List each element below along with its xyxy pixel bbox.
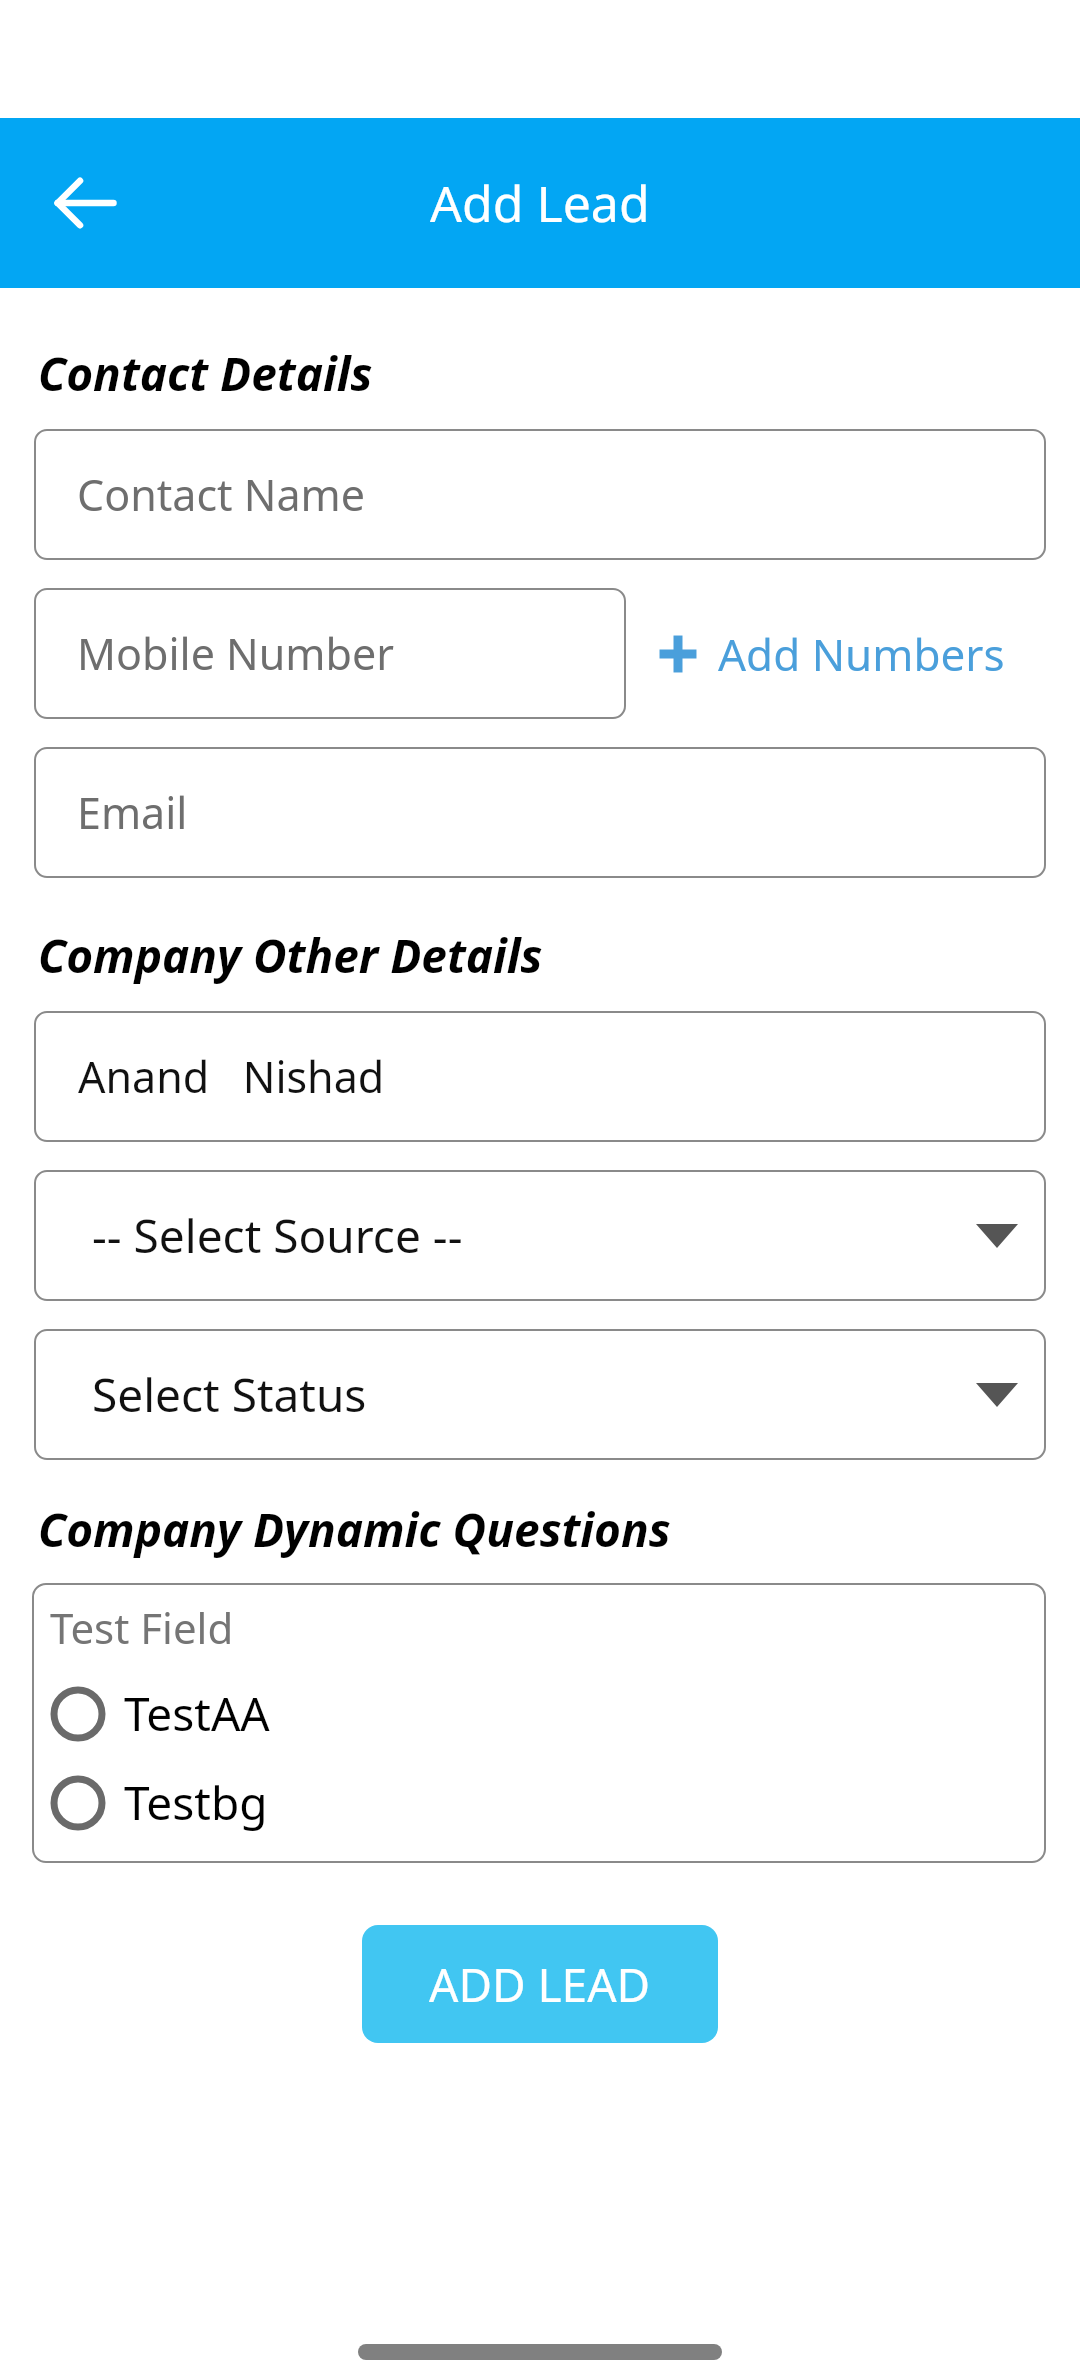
staticText: Test Field <box>50 1599 234 1656</box>
staticText: -- Select Source -- <box>92 1204 463 1267</box>
staticText: Anand Nishad <box>78 1047 385 1106</box>
staticText: Add Lead <box>430 169 650 237</box>
button[interactable]: TestAA <box>50 1678 1046 1749</box>
staticText: Contact Name <box>77 465 366 524</box>
staticText: Testbg <box>124 1771 268 1834</box>
button[interactable]: Add Numbers <box>648 610 1013 698</box>
staticText: ADD LEAD <box>429 1953 651 2016</box>
button[interactable]: Mobile Number <box>34 588 626 719</box>
staticText: Company Other Details <box>38 924 543 987</box>
button[interactable]: Anand Nishad <box>34 1011 1046 1142</box>
button[interactable]: Email <box>34 747 1046 878</box>
staticText: Add Numbers <box>718 624 1005 684</box>
button[interactable]: Test Field <box>32 1583 1046 1863</box>
button[interactable]: Back <box>26 144 144 262</box>
staticText: Select Status <box>92 1363 367 1426</box>
button[interactable]: Select Status <box>34 1329 1046 1460</box>
staticText: Company Dynamic Questions <box>38 1498 671 1561</box>
staticText: Mobile Number <box>77 624 394 683</box>
staticText: Contact Details <box>38 342 373 405</box>
button[interactable]: -- Select Source -- <box>34 1170 1046 1301</box>
button[interactable]: Testbg <box>50 1767 1046 1838</box>
button[interactable]: Contact Name <box>34 429 1046 560</box>
button[interactable]: ADD LEAD <box>362 1925 718 2043</box>
staticText: TestAA <box>124 1682 270 1745</box>
staticText: Email <box>77 783 188 842</box>
